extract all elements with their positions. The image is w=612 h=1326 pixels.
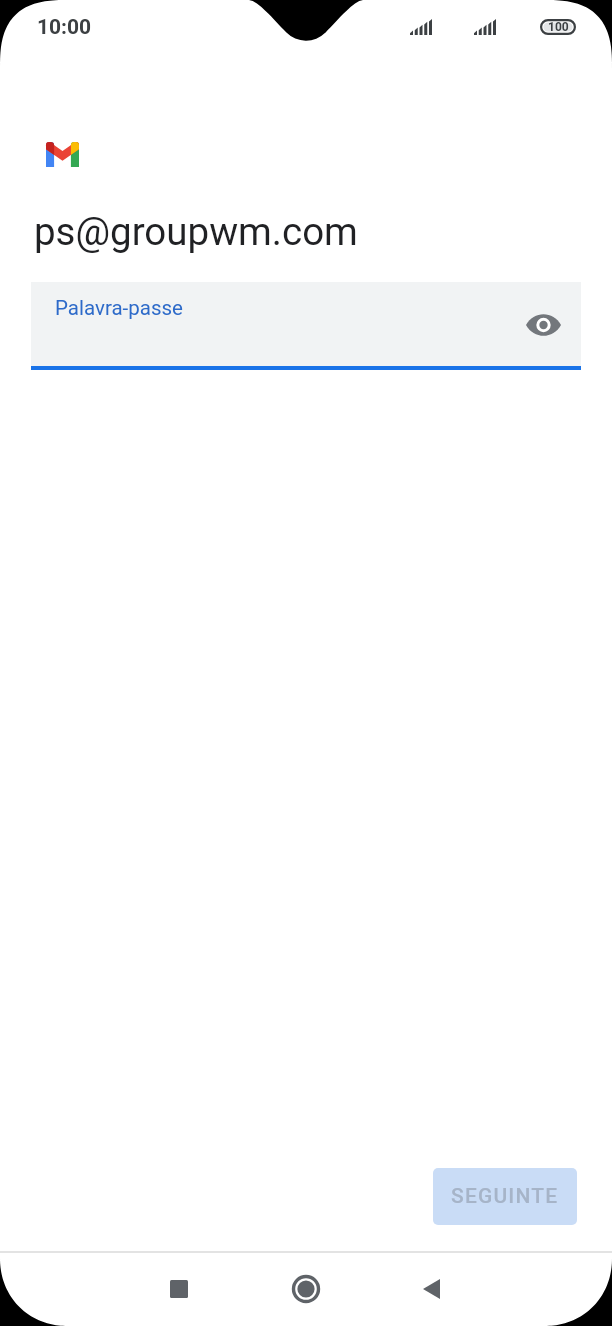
staticText: 100 [548,20,569,34]
button[interactable]: Back [404,1262,458,1316]
staticText: Palavra-passe [55,296,183,320]
button[interactable]: SEGUINTE [433,1168,577,1225]
staticText: 10:00 [37,15,92,40]
button[interactable]: Mostrar palavra-passe [526,313,561,337]
staticText: SEGUINTE [451,1184,559,1209]
button[interactable]: Home [279,1262,333,1316]
button[interactable]: Palavra-passe [31,282,581,370]
button[interactable]: Recent apps [152,1262,206,1316]
staticText: ps@groupwm.com [34,209,358,254]
